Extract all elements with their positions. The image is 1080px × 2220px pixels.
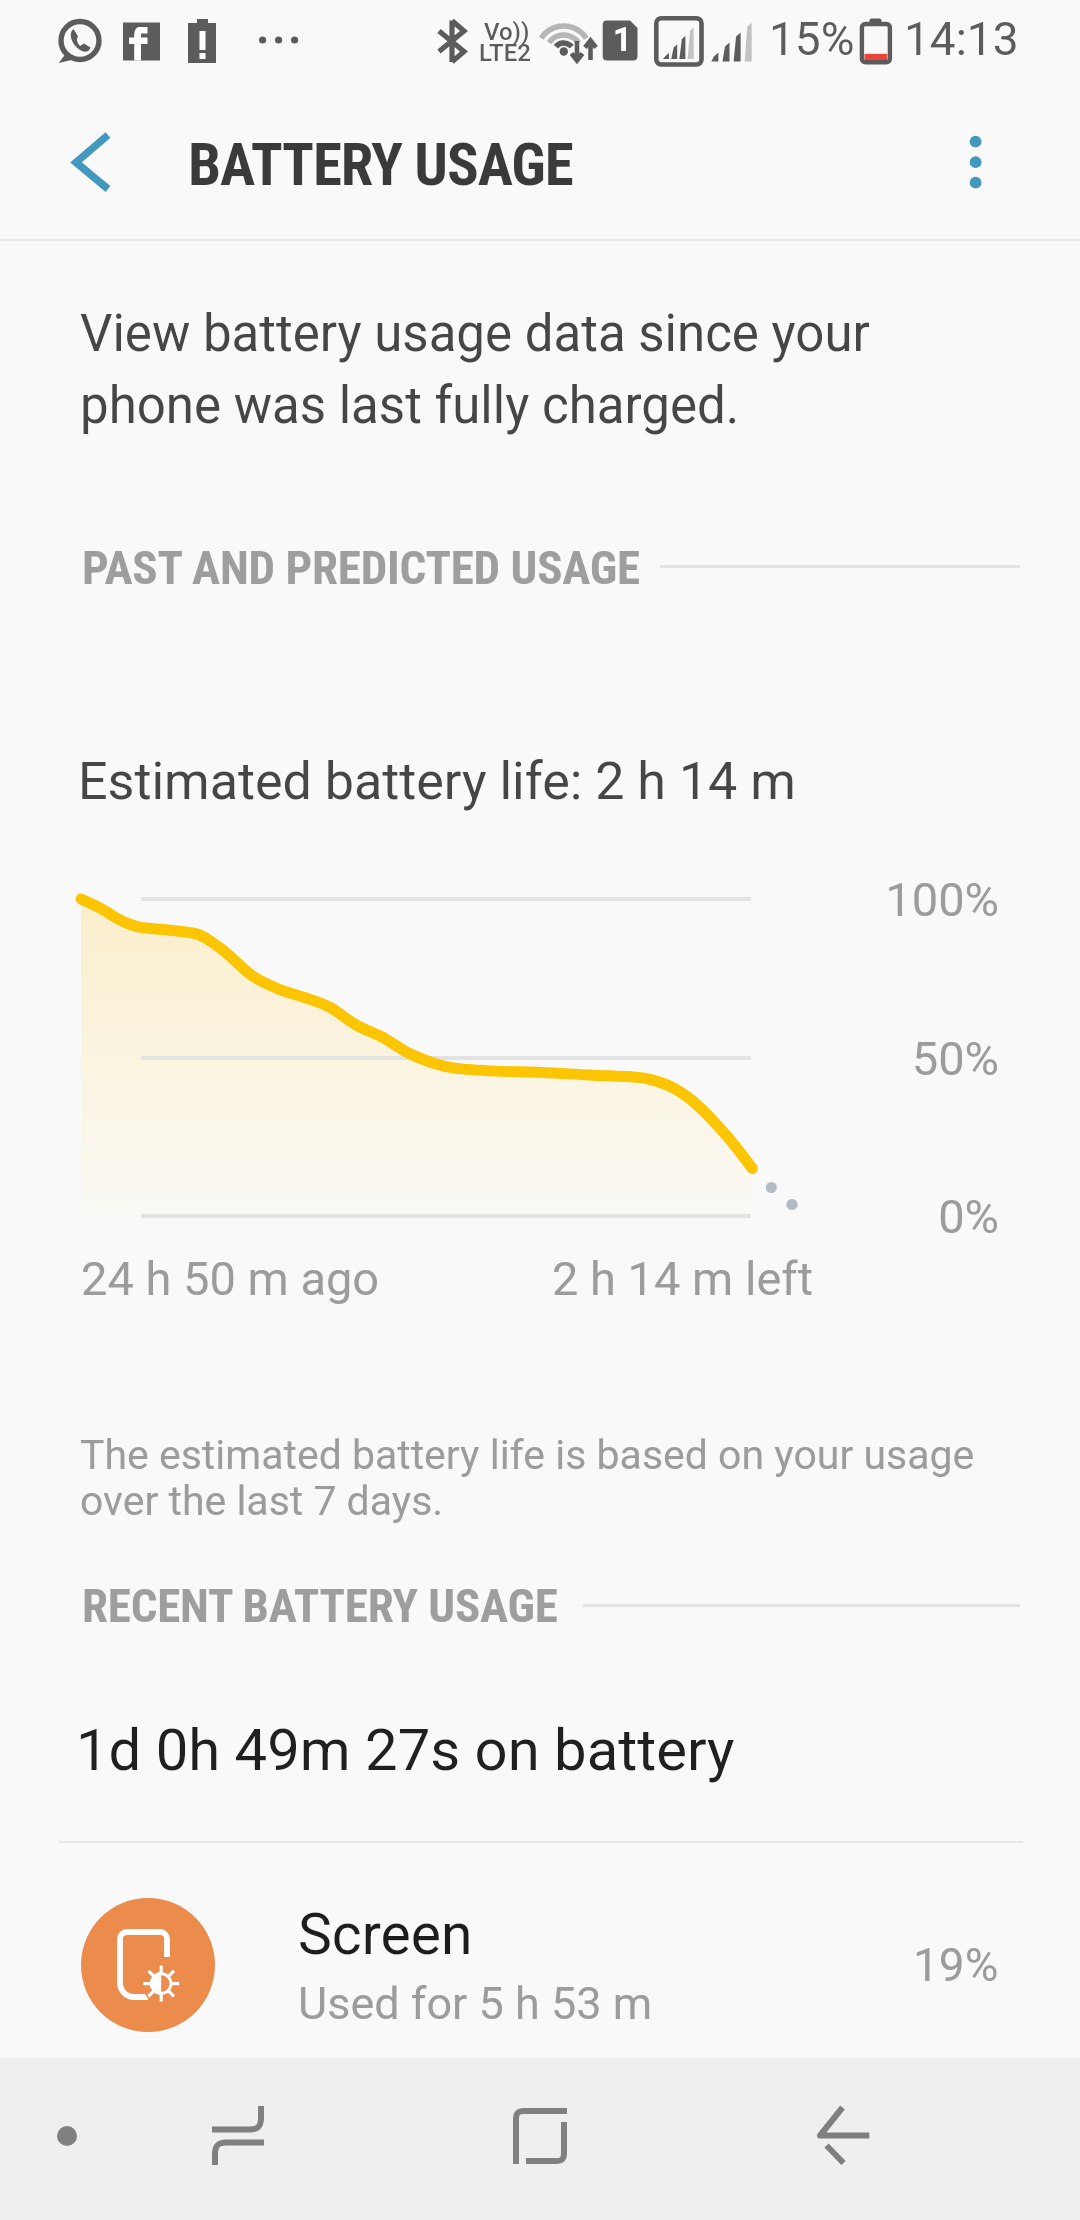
- staticText: Estimated battery life: 2 h 14 m: [78, 751, 796, 812]
- button[interactable]: Notifications: [17, 2086, 117, 2186]
- staticText: View battery usage data since your phone…: [80, 304, 870, 435]
- staticText: PAST AND PREDICTED USAGE: [82, 540, 640, 595]
- staticText: 0%: [938, 1189, 999, 1244]
- button[interactable]: Home: [490, 2086, 590, 2186]
- staticText: 2 h 14 m left: [552, 1251, 814, 1306]
- staticText: BATTERY USAGE: [188, 130, 573, 199]
- staticText: Screen: [298, 1901, 473, 1968]
- staticText: 14:13: [904, 12, 1019, 66]
- staticText: 1: [613, 20, 632, 59]
- staticText: 100%: [885, 872, 999, 927]
- button[interactable]: Recents: [188, 2086, 288, 2186]
- staticText: The estimated battery life is based on y…: [80, 1431, 975, 1525]
- button[interactable]: Screen: [0, 1858, 1080, 2072]
- button[interactable]: Navigate up: [20, 107, 132, 219]
- staticText: RECENT BATTERY USAGE: [82, 1578, 558, 1633]
- staticText: Vo)): [484, 18, 530, 46]
- button[interactable]: More options: [924, 101, 1028, 205]
- staticText: 50%: [911, 1031, 999, 1086]
- staticText: 19%: [913, 1938, 999, 1992]
- staticText: Used for 5 h 53 m: [298, 1977, 653, 2030]
- staticText: 15%: [769, 12, 855, 66]
- button[interactable]: Back: [793, 2086, 893, 2186]
- staticText: LTE2: [479, 39, 531, 67]
- staticText: 1d 0h 49m 27s on battery: [76, 1716, 735, 1784]
- staticText: 24 h 50 m ago: [81, 1251, 380, 1306]
